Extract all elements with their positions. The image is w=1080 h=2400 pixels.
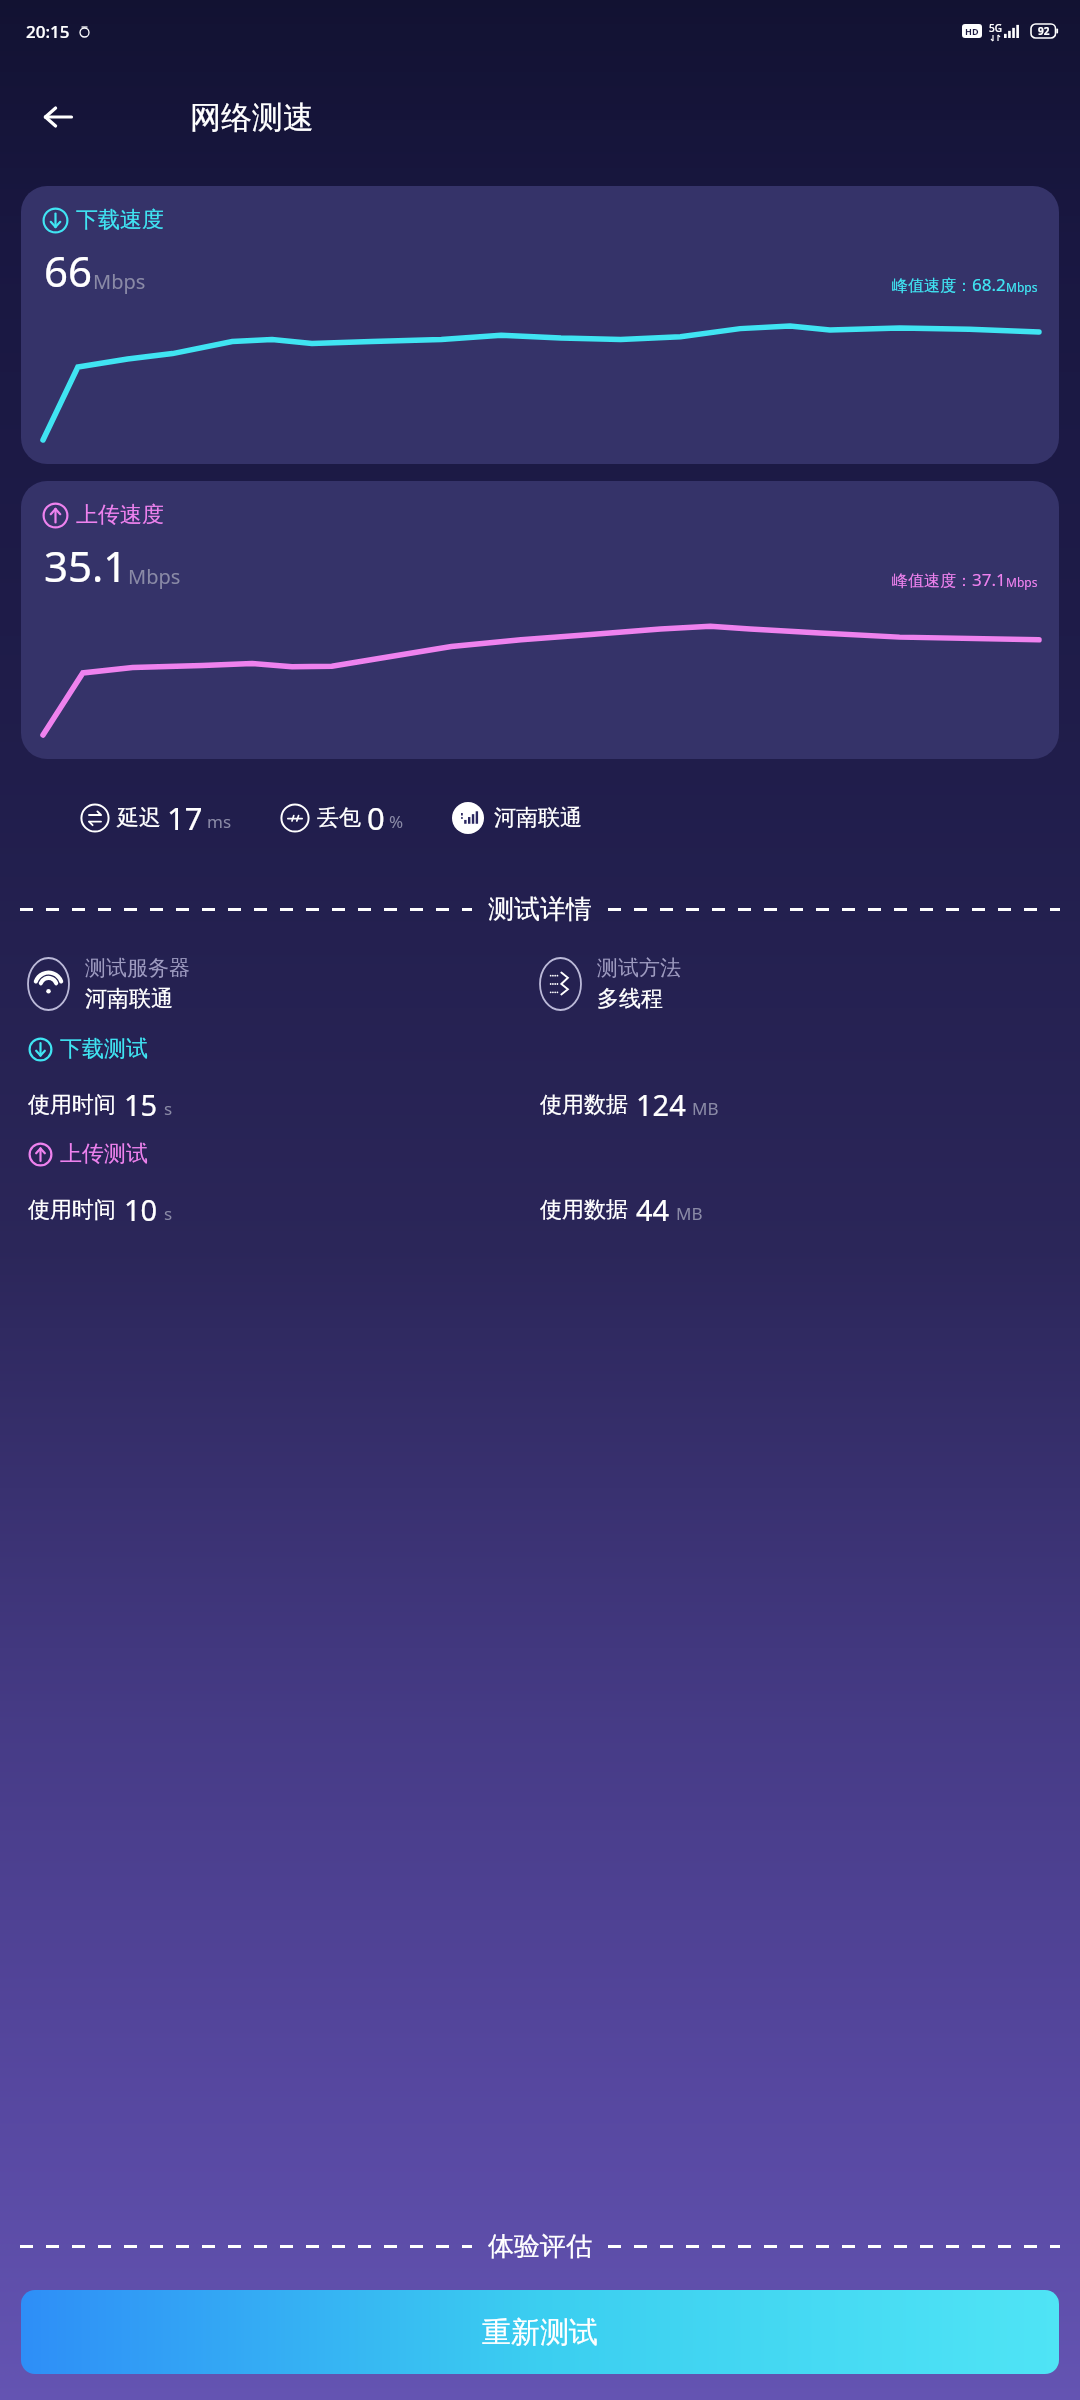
staticText: 峰值速度： [892,276,972,296]
staticText: 上传速度 [76,501,164,529]
staticText: Mbps [128,563,181,590]
button[interactable]: 上传速度 [21,481,1059,759]
staticText: 20:15 [26,20,70,43]
button[interactable]: Back [30,89,86,145]
button[interactable]: 河南联通 [452,802,582,834]
staticText: Mbps [1006,279,1038,295]
staticText: 重新测试 [482,2314,598,2351]
staticText: 使用时间 [28,1091,116,1119]
staticText: 124 [636,1085,686,1124]
button[interactable]: 使用时间 [28,1085,540,1124]
staticText: 测试方法 [597,955,681,981]
staticText: 92 [1038,24,1050,38]
staticText: 37.1 [972,568,1006,591]
button[interactable]: 使用时间 [28,1190,540,1229]
staticText: s [164,1097,173,1120]
staticText: 体验评估 [488,2230,592,2263]
staticText: 使用数据 [540,1091,628,1119]
staticText: 10 [124,1190,158,1229]
staticText: 44 [636,1190,670,1229]
button[interactable]: 延迟 [80,797,232,839]
staticText: 上传测试 [60,1140,148,1168]
staticText: 66 [44,242,93,299]
staticText: 峰值速度： [892,571,972,591]
staticText: 丢包 [317,804,361,832]
staticText: 网络测速 [190,98,314,137]
staticText: MB [676,1202,703,1225]
button[interactable]: 重新测试 [21,2290,1059,2374]
staticText: % [389,810,404,833]
button[interactable]: 使用数据 [540,1085,1052,1124]
staticText: ms [207,810,232,833]
staticText: 68.2 [972,273,1006,296]
staticText: 延迟 [117,804,161,832]
button[interactable]: 测试服务器 [28,955,540,1013]
staticText: 35.1 [44,537,128,594]
staticText: 15 [124,1085,158,1124]
staticText: 测试服务器 [85,955,190,981]
staticText: 多线程 [597,985,663,1013]
staticText: 测试详情 [488,893,592,926]
staticText: 下载测试 [60,1035,148,1063]
staticText: MB [692,1097,719,1120]
button[interactable]: 测试方法 [540,955,1052,1013]
staticText: 5G [989,21,1002,35]
button[interactable]: 下载速度 [21,186,1059,464]
staticText: 17 [167,797,203,839]
staticText: HD [965,25,979,37]
staticText: Mbps [93,268,146,295]
staticText: Mbps [1006,574,1038,590]
staticText: 使用数据 [540,1196,628,1224]
staticText: 0 [367,797,385,839]
staticText: 使用时间 [28,1196,116,1224]
staticText: s [164,1202,173,1225]
staticText: 河南联通 [494,804,582,832]
button[interactable]: 丢包 [280,797,404,839]
staticText: 下载速度 [76,206,164,234]
staticText: 河南联通 [85,985,173,1013]
button[interactable]: 使用数据 [540,1190,1052,1229]
